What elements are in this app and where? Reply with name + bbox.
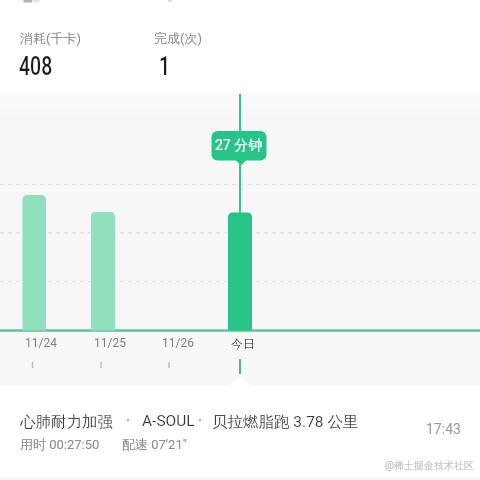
button[interactable]: 心肺耐力加强 [0, 392, 480, 464]
staticText: · [198, 412, 203, 430]
staticText: 今日 [231, 336, 255, 351]
staticText: 1 [159, 52, 171, 81]
staticText: @稀土掘金技术社区 [385, 459, 474, 472]
button[interactable]: 11/24 [1, 336, 81, 350]
staticText: · [126, 412, 131, 430]
staticText: 27 分钟 [215, 137, 263, 155]
button[interactable]: 今日 [203, 336, 283, 351]
staticText: 消耗(千卡) [20, 30, 81, 46]
staticText: 用时 00:27:50 [20, 436, 100, 452]
button[interactable]: 11/25 [70, 336, 150, 350]
staticText: 完成(次) [154, 30, 202, 46]
staticText: 11/25 [94, 336, 126, 350]
staticText: 408 [19, 52, 52, 81]
staticText: A-SOUL [142, 412, 195, 430]
staticText: 心肺耐力加强 [20, 412, 113, 432]
staticText: 11/26 [162, 336, 194, 350]
button[interactable]: 11/26 [138, 336, 218, 350]
staticText: 贝拉燃脂跑 3.78 公里 [212, 412, 359, 432]
staticText: 11/24 [25, 336, 57, 350]
staticText: 配速 07'21" [122, 436, 187, 452]
staticText: 17:43 [426, 421, 461, 437]
